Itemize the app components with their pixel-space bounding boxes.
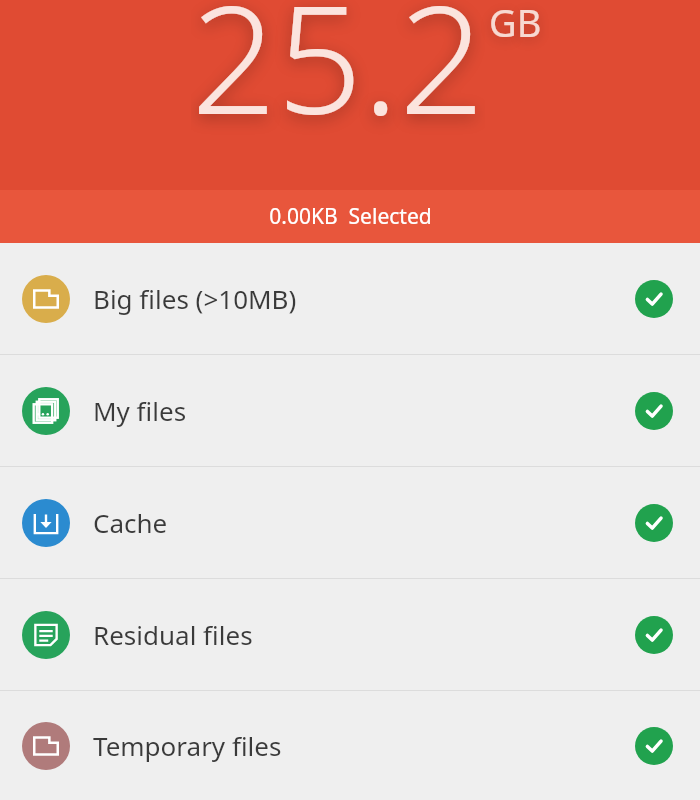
staticText: 25.2 <box>191 0 485 144</box>
staticText: My files <box>93 393 635 428</box>
staticText: Cache <box>93 505 635 540</box>
button[interactable]: Selected <box>635 727 673 765</box>
staticText: Big files (>10MB) <box>93 281 635 316</box>
staticText: 0.00KB Selected <box>269 202 432 231</box>
button[interactable]: Selected <box>635 392 673 430</box>
button[interactable]: My files <box>0 355 700 466</box>
button[interactable]: Big files (>10MB) <box>0 243 700 354</box>
button[interactable]: Selected <box>635 280 673 318</box>
button[interactable]: Selected <box>635 504 673 542</box>
button[interactable]: Selected <box>635 616 673 654</box>
staticText: Temporary files <box>93 728 635 763</box>
button[interactable]: Residual files <box>0 579 700 690</box>
staticText: GB <box>489 0 542 48</box>
button[interactable]: Cache <box>0 467 700 578</box>
button[interactable]: Temporary files <box>0 691 700 800</box>
staticText: Residual files <box>93 617 635 652</box>
